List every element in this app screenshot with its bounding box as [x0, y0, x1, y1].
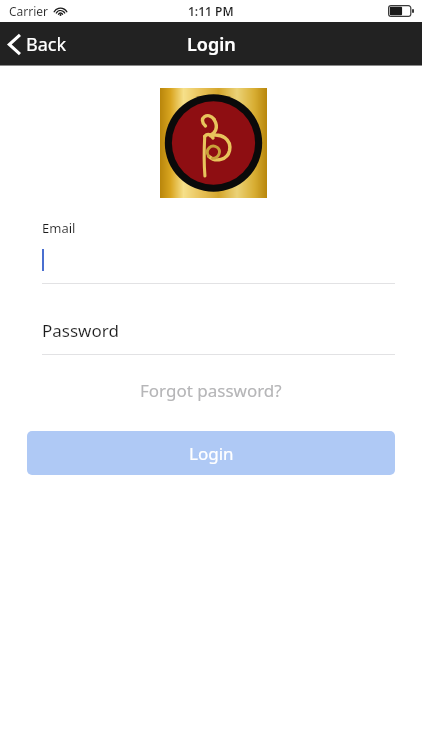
button[interactable]: Forgot password?	[27, 371, 395, 409]
button[interactable]: Password	[27, 311, 395, 355]
staticText: 1:11 PM	[188, 3, 234, 19]
button[interactable]: Back	[0, 22, 77, 66]
staticText: Login	[189, 442, 234, 465]
staticText: Back	[26, 32, 67, 57]
staticText: Carrier	[9, 3, 49, 19]
button[interactable]: Login	[27, 431, 395, 475]
staticText: Password	[42, 319, 119, 342]
staticText: Forgot password?	[140, 379, 282, 402]
button[interactable]	[27, 240, 395, 284]
staticText: Email	[42, 219, 76, 237]
staticText: Login	[187, 32, 236, 57]
